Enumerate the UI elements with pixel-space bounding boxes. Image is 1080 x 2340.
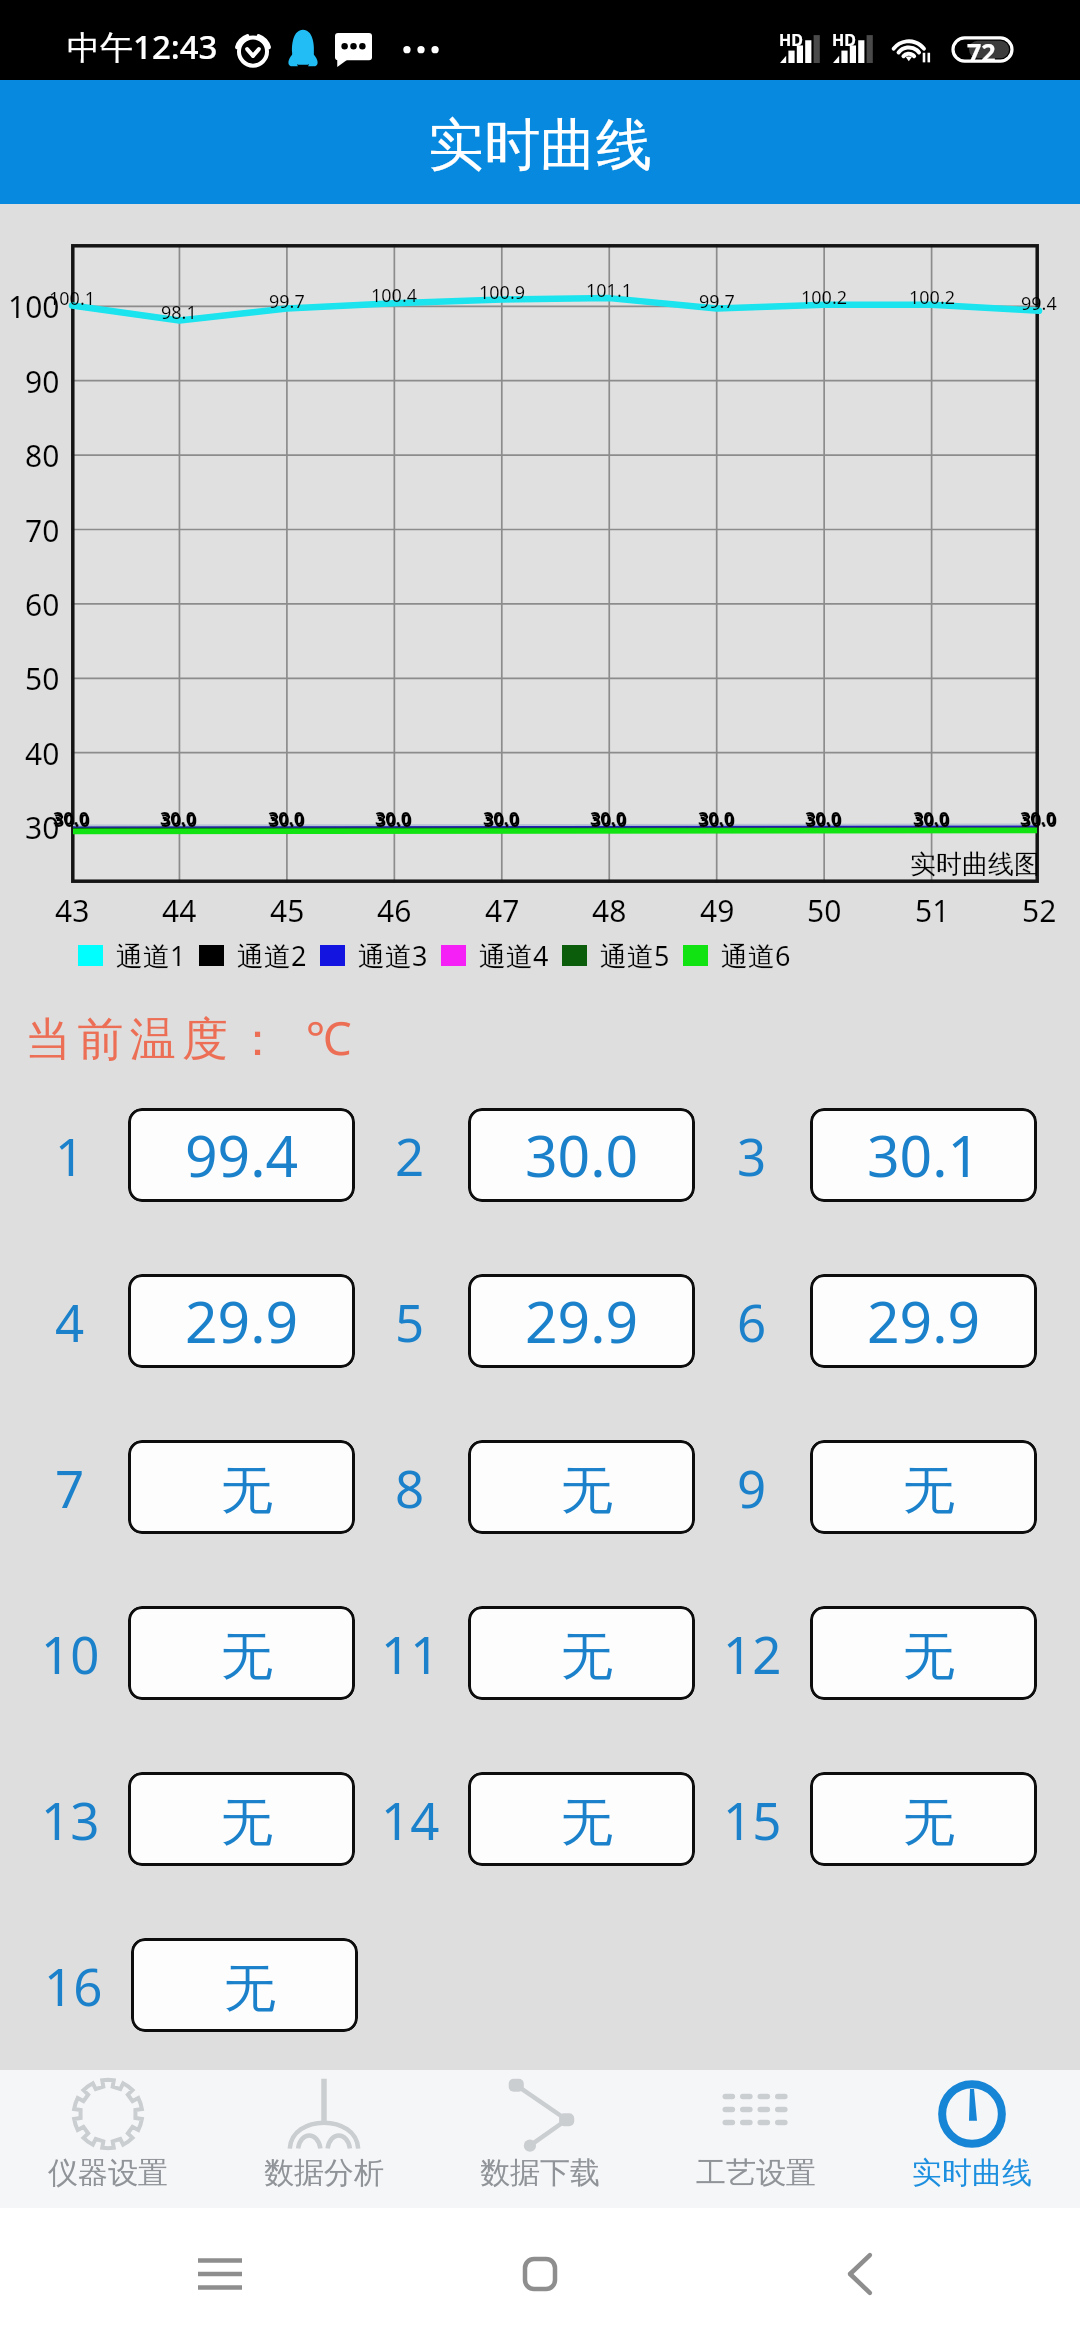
staticText: 100.2 — [909, 285, 956, 309]
staticText: 无 — [903, 1458, 955, 1524]
staticText: 无 — [561, 1790, 613, 1856]
staticText: 100.1 — [49, 286, 96, 310]
button[interactable]: 数据分析 — [216, 2070, 432, 2208]
button[interactable]: Home — [492, 2226, 588, 2322]
staticText: 30 — [25, 807, 60, 848]
button[interactable]: 无 — [468, 1606, 695, 1700]
staticText: 3 — [737, 1121, 767, 1190]
staticText: 30.0 — [591, 808, 627, 832]
staticText: 40 — [25, 733, 60, 774]
button[interactable]: 无 — [468, 1772, 695, 1866]
button[interactable]: 工艺设置 — [648, 2070, 864, 2208]
staticText: 99.7 — [699, 289, 735, 313]
staticText: 100 — [8, 286, 60, 327]
button[interactable]: 29.9 — [128, 1274, 355, 1368]
staticText: 30.0 — [913, 806, 949, 830]
staticText: 10 — [41, 1619, 100, 1688]
staticText: 30.0 — [268, 806, 304, 830]
staticText: 98.1 — [161, 300, 197, 324]
staticText: 30.0 — [590, 806, 626, 830]
button[interactable]: 无 — [810, 1772, 1037, 1866]
staticText: 99.4 — [1021, 291, 1057, 315]
staticText: 100.4 — [371, 283, 418, 307]
button[interactable]: 29.9 — [810, 1274, 1037, 1368]
staticText: 101.1 — [586, 278, 633, 302]
staticText: 44 — [162, 890, 197, 922]
staticText: 2 — [395, 1121, 425, 1190]
staticText: 实时曲线 — [912, 2154, 1032, 2192]
staticText: 46 — [377, 890, 412, 922]
button[interactable]: 无 — [128, 1606, 355, 1700]
staticText: 30.0 — [484, 808, 520, 832]
staticText: 无 — [561, 1624, 613, 1690]
staticText: 47 — [485, 890, 520, 922]
staticText: 50 — [25, 658, 60, 699]
button[interactable]: Recent apps — [172, 2226, 268, 2322]
staticText: 30.0 — [375, 806, 411, 830]
staticText: 30.0 — [160, 806, 196, 830]
button[interactable]: 30.1 — [810, 1108, 1037, 1202]
staticText: 50 — [807, 890, 842, 922]
staticText: 通道3 — [358, 937, 428, 974]
button[interactable]: 无 — [131, 1938, 358, 2032]
button[interactable]: 无 — [810, 1440, 1037, 1534]
button[interactable]: 29.9 — [468, 1274, 695, 1368]
staticText: 通道1 — [116, 937, 186, 974]
staticText: 29.9 — [525, 1282, 639, 1360]
staticText: 48 — [592, 890, 627, 922]
staticText: 52 — [1022, 890, 1057, 922]
staticText: 29.9 — [867, 1282, 981, 1360]
staticText: 99.7 — [269, 289, 305, 313]
button[interactable]: 无 — [128, 1772, 355, 1866]
staticText: 49 — [700, 890, 735, 922]
staticText: 15 — [723, 1785, 782, 1854]
button[interactable]: 无 — [810, 1606, 1037, 1700]
staticText: 43 — [55, 890, 90, 922]
button[interactable]: 99.4 — [128, 1108, 355, 1202]
staticText: 实时曲线图 — [910, 848, 1040, 881]
staticText: HD — [779, 29, 803, 51]
staticText: 5 — [395, 1287, 425, 1356]
staticText: 90 — [25, 361, 60, 402]
button[interactable]: 数据下载 — [432, 2070, 648, 2208]
staticText: 无 — [224, 1956, 276, 2022]
staticText: 30.0 — [161, 808, 197, 832]
staticText: 13 — [41, 1785, 100, 1854]
staticText: 30.0 — [269, 808, 305, 832]
staticText: 中午12:43 — [67, 24, 218, 69]
staticText: 8 — [395, 1453, 425, 1522]
button[interactable]: Back — [812, 2226, 908, 2322]
staticText: 通道4 — [479, 937, 549, 974]
staticText: 工艺设置 — [696, 2154, 816, 2192]
staticText: 9 — [737, 1453, 767, 1522]
staticText: 100.2 — [801, 285, 848, 309]
staticText: 60 — [25, 584, 60, 625]
staticText: 无 — [903, 1624, 955, 1690]
staticText: 30.0 — [914, 808, 950, 832]
staticText: 99.4 — [185, 1116, 299, 1194]
staticText: 16 — [44, 1951, 103, 2020]
button[interactable]: 无 — [468, 1440, 695, 1534]
button[interactable]: 实时曲线 — [0, 80, 1080, 204]
staticText: 通道2 — [237, 937, 307, 974]
staticText: 仪器设置 — [48, 2154, 168, 2192]
staticText: 30.0 — [54, 808, 90, 832]
staticText: 30.0 — [53, 806, 89, 830]
staticText: 100.9 — [479, 280, 526, 304]
staticText: 30.0 — [698, 806, 734, 830]
button[interactable]: 仪器设置 — [0, 2070, 216, 2208]
staticText: 4 — [55, 1287, 85, 1356]
staticText: 30.0 — [376, 808, 412, 832]
staticText: 12 — [723, 1619, 782, 1688]
staticText: 无 — [221, 1624, 273, 1690]
staticText: 无 — [221, 1458, 273, 1524]
staticText: 无 — [561, 1458, 613, 1524]
staticText: 30.0 — [699, 808, 735, 832]
staticText: 45 — [270, 890, 305, 922]
staticText: 6 — [737, 1287, 767, 1356]
button[interactable]: 无 — [128, 1440, 355, 1534]
staticText: 数据分析 — [264, 2154, 384, 2192]
staticText: 7 — [55, 1453, 85, 1522]
button[interactable]: 30.0 — [468, 1108, 695, 1202]
button[interactable]: 实时曲线 — [864, 2070, 1080, 2208]
